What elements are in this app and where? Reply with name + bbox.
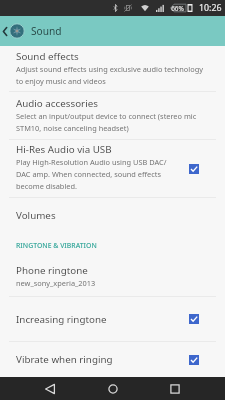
button[interactable]: Vibrate when ringing	[0, 342, 225, 377]
button[interactable]: Navigate up	[0, 16, 9, 46]
button[interactable]: Back	[25, 377, 75, 400]
staticText: Increasing ringtone	[16, 313, 107, 326]
staticText: 66%	[171, 4, 184, 13]
button[interactable]: Sound effects	[0, 46, 225, 91]
staticText: 10:26	[199, 2, 222, 14]
button[interactable]: Audio accessories	[0, 92, 225, 139]
staticText: Adjust sound effects using exclusive aud…	[16, 64, 209, 87]
staticText: Play High-Resolution Audio using USB DAC…	[16, 157, 180, 192]
button[interactable]: Home	[88, 377, 138, 400]
staticText: Vibrate when ringing	[16, 353, 113, 366]
button[interactable]: Hi-Res Audio via USB	[0, 140, 225, 197]
staticText: Sound	[31, 24, 62, 38]
staticText: Hi-Res Audio via USB	[16, 143, 112, 156]
staticText: Select an input/output device to connect…	[16, 111, 209, 134]
button[interactable]: Increasing ringtone	[0, 297, 225, 341]
button[interactable]: Volumes	[0, 198, 225, 236]
staticText: Phone ringtone	[16, 264, 88, 277]
staticText: Volumes	[16, 209, 56, 222]
staticText: RINGTONE & VIBRATION	[16, 241, 97, 250]
staticText: new_sony_xperia_2013	[16, 278, 96, 288]
button[interactable]: Recent apps	[150, 377, 200, 400]
button[interactable]: Phone ringtone	[0, 258, 225, 296]
staticText: Sound effects	[16, 50, 79, 63]
staticText: Audio accessories	[16, 97, 98, 110]
